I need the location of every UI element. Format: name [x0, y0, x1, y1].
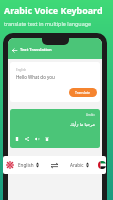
staticText: مرحبا ما رأيك	[70, 121, 95, 127]
staticText: Hello What do you	[16, 74, 55, 80]
button[interactable]: Swap languages	[51, 162, 58, 169]
button[interactable]: Speak	[35, 137, 39, 141]
button[interactable]: Translate	[69, 88, 97, 97]
staticText: translate text in multiple language	[4, 20, 92, 27]
staticText: Text Translation	[20, 47, 52, 53]
button[interactable]: Back	[12, 48, 17, 53]
staticText: Arabic	[70, 162, 84, 168]
button[interactable]: Arabic	[70, 161, 106, 169]
button[interactable]: Delete	[45, 137, 49, 141]
staticText: Arabic Voice Keyboard	[4, 4, 103, 16]
button[interactable]: Share	[25, 137, 29, 141]
staticText: Arabic	[86, 113, 95, 117]
staticText: English	[16, 68, 27, 72]
staticText: Translate	[75, 90, 91, 95]
button[interactable]: Copy	[15, 137, 19, 141]
staticText: English	[18, 162, 34, 168]
button[interactable]: English	[6, 161, 39, 169]
